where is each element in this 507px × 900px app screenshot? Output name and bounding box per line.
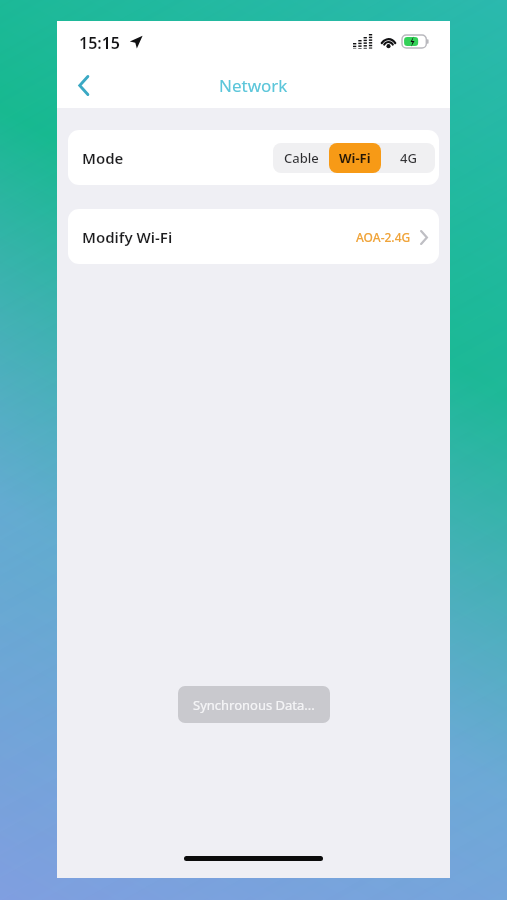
staticText: AOA-2.4G xyxy=(356,229,411,245)
staticText: Cable xyxy=(284,149,319,167)
staticText: 4G xyxy=(400,149,417,167)
button[interactable]: Wi-Fi xyxy=(329,143,381,173)
button[interactable]: Cable xyxy=(273,143,329,173)
staticText: Mode xyxy=(82,148,124,168)
button[interactable]: 4G xyxy=(381,143,435,173)
button[interactable]: Synchronous Data... xyxy=(178,686,330,723)
staticText: 15:15 xyxy=(79,32,121,54)
staticText: Network xyxy=(219,74,288,97)
staticText: Modify Wi-Fi xyxy=(82,227,173,247)
staticText: Synchronous Data... xyxy=(193,696,315,714)
button[interactable]: Modify Wi-Fi xyxy=(68,209,439,264)
button[interactable]: Back xyxy=(61,63,105,107)
staticText: Wi-Fi xyxy=(339,149,371,167)
